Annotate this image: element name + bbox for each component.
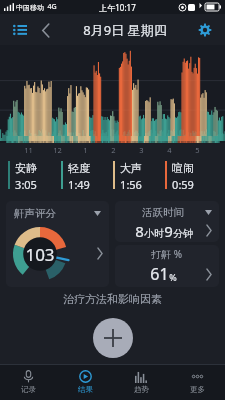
staticText: 结果: [78, 385, 93, 394]
staticText: 12: [53, 145, 62, 155]
button[interactable]: 结果: [57, 364, 113, 400]
staticText: 治疗方法和影响因素: [63, 292, 162, 306]
button[interactable]: Back: [36, 20, 56, 40]
staticText: 更多: [190, 385, 205, 394]
button[interactable]: 安静: [8, 159, 61, 194]
staticText: 趋势: [134, 385, 149, 394]
staticText: 3: [139, 145, 144, 155]
staticText: 1: [83, 145, 88, 155]
button[interactable]: Settings: [194, 19, 216, 41]
staticText: 1:49: [68, 177, 90, 192]
staticText: 4G: [47, 2, 57, 12]
button[interactable]: Add: [93, 318, 133, 358]
button[interactable]: 活跃时间: [115, 201, 219, 242]
staticText: 大声: [120, 161, 142, 175]
staticText: 分钟: [173, 227, 193, 240]
staticText: 4: [167, 145, 172, 155]
staticText: 9: [164, 221, 173, 241]
button[interactable]: 更多: [169, 364, 225, 400]
staticText: 中国移动: [16, 3, 44, 12]
staticText: %: [169, 271, 177, 283]
button[interactable]: 鼾声评分: [6, 201, 109, 287]
button[interactable]: 治疗方法和影响因素: [0, 292, 225, 306]
staticText: 8月9日 星期四: [83, 21, 167, 39]
button[interactable]: 喧闹: [165, 159, 217, 194]
staticText: 喧闹: [172, 161, 194, 175]
button[interactable]: 记录: [0, 364, 57, 400]
button[interactable]: 打鼾 %: [115, 245, 219, 287]
staticText: 记录: [21, 385, 36, 394]
button[interactable]: Menu: [9, 19, 31, 41]
button[interactable]: 趋势: [113, 364, 169, 400]
staticText: 5: [195, 145, 200, 155]
staticText: 0:59: [172, 177, 194, 192]
staticText: 3:05: [15, 177, 37, 192]
staticText: 11: [24, 145, 33, 155]
staticText: 安静: [15, 161, 37, 175]
staticText: 2: [111, 145, 116, 155]
staticText: 61: [150, 263, 169, 285]
staticText: 小时: [144, 227, 164, 240]
button[interactable]: 大声: [113, 159, 165, 194]
staticText: 轻度: [68, 161, 90, 175]
staticText: 上午10:17: [99, 2, 136, 13]
staticText: 1:56: [120, 177, 142, 192]
staticText: 活跃时间: [142, 206, 184, 219]
staticText: 8: [135, 221, 144, 241]
button[interactable]: 轻度: [61, 159, 113, 194]
staticText: 鼾声评分: [14, 207, 56, 220]
staticText: 打鼾 %: [151, 247, 182, 261]
staticText: 103: [25, 243, 55, 266]
